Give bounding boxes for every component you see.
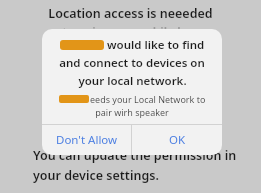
staticText: Don't Allow: [56, 132, 118, 148]
staticText: You can update the permission in: [33, 147, 237, 164]
staticText: Location access is neeeded: [48, 5, 213, 22]
staticText: your local network.: [78, 73, 187, 89]
staticText: eeds your Local Network to: [90, 93, 206, 105]
staticText: OK: [169, 132, 186, 148]
staticText: pair wirh speaker: [95, 106, 169, 118]
button[interactable]: OK: [132, 125, 222, 155]
staticText: would like to find: [107, 37, 205, 53]
staticText: to pair your mobile box: [62, 24, 199, 40]
staticText: and connect to devices on: [59, 55, 205, 71]
staticText: your device settings.: [33, 167, 159, 184]
button[interactable]: Don't Allow: [42, 125, 131, 155]
